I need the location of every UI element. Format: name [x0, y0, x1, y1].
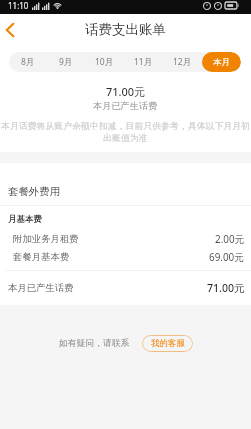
- staticText: 10月: [95, 56, 114, 68]
- staticText: 我的客服: [151, 338, 185, 349]
- staticText: 如有疑问，请联系: [59, 338, 130, 349]
- staticText: 11:10: [8, 0, 29, 11]
- staticText: 71.00元: [106, 84, 146, 99]
- staticText: 9月: [59, 56, 73, 68]
- staticText: 71.00元: [207, 281, 245, 295]
- button[interactable]: 本月已产生话费: [0, 271, 251, 305]
- staticText: 附加业务月租费: [13, 233, 79, 245]
- staticText: 12月: [173, 56, 192, 68]
- button[interactable]: 10月: [85, 52, 124, 72]
- button[interactable]: 9月: [47, 52, 85, 72]
- staticText: 套餐月基本费: [13, 251, 70, 263]
- staticText: 本月话费将从账户余额中扣减，目前只供参考，具体以下月月初出账值为准: [1, 120, 250, 144]
- button[interactable]: 11月: [124, 52, 163, 72]
- button[interactable]: 套餐月基本费: [0, 248, 251, 266]
- staticText: 套餐外费用: [8, 185, 60, 198]
- button[interactable]: 附加业务月租费: [0, 230, 251, 248]
- staticText: 8月: [21, 56, 35, 68]
- staticText: 本月已产生话费: [93, 100, 158, 112]
- button[interactable]: 8月: [9, 52, 47, 72]
- button[interactable]: 12月: [163, 52, 202, 72]
- button[interactable]: Back: [0, 14, 19, 45]
- button[interactable]: 我的客服: [142, 335, 193, 352]
- staticText: 本月: [213, 57, 230, 68]
- button[interactable]: 本月: [202, 52, 241, 72]
- staticText: 2.00元: [215, 232, 245, 246]
- staticText: 话费支出账单: [85, 21, 166, 38]
- staticText: 69.00元: [209, 250, 245, 264]
- staticText: 月基本费: [8, 214, 42, 225]
- staticText: 本月已产生话费: [8, 282, 74, 294]
- staticText: 11月: [134, 56, 153, 68]
